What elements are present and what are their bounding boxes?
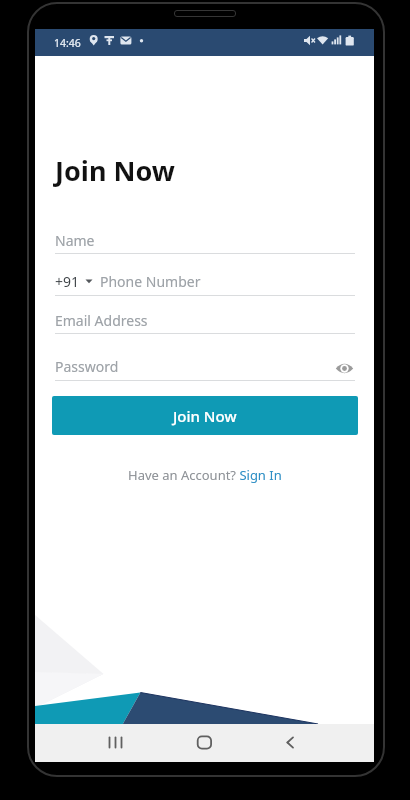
button[interactable]: Email Address [55,310,255,330]
button[interactable] [275,724,315,762]
button[interactable]: Phone Number [100,271,300,291]
staticText: 14:46 [54,36,81,50]
button[interactable]: Name [55,230,255,250]
button[interactable] [95,724,135,762]
button[interactable]: Password [55,356,255,376]
button[interactable] [335,361,355,376]
staticText: Join Now [55,152,175,189]
staticText: Phone Number [100,272,201,291]
button[interactable]: +91 [55,271,95,291]
staticText: +91 [55,272,80,291]
staticText: Have an Account? Sign In [128,466,282,484]
button[interactable] [185,724,225,762]
staticText: Name [55,231,95,250]
staticText: Password [55,357,119,376]
button[interactable]: Join Now [52,396,358,435]
staticText: Email Address [55,311,148,330]
staticText: Join Now [173,406,237,426]
button[interactable]: Have an Account? Sign In [35,465,374,485]
